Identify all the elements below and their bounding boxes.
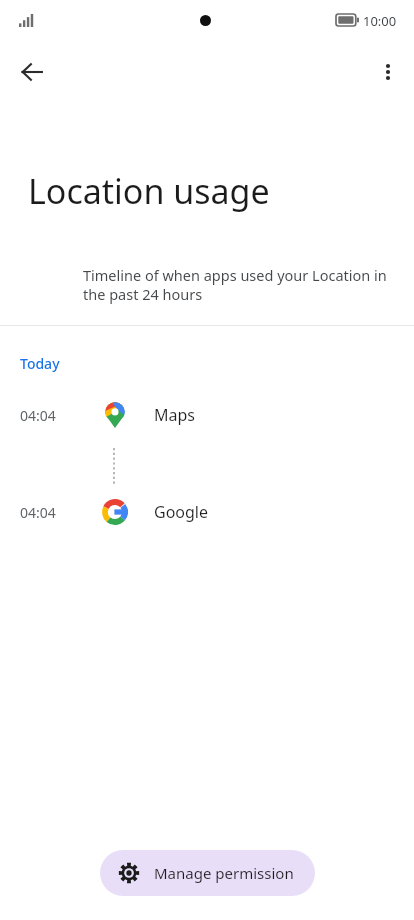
staticText: 10:00 xyxy=(363,12,397,30)
button[interactable]: 04:04 xyxy=(0,491,414,533)
staticText: 04:04 xyxy=(20,503,56,522)
staticText: Today xyxy=(20,354,60,373)
button[interactable]: More options xyxy=(368,52,408,92)
staticText: Manage permission xyxy=(154,863,294,883)
staticText: 04:04 xyxy=(20,406,56,425)
button[interactable]: Back xyxy=(12,52,52,92)
staticText: Location usage xyxy=(28,168,270,214)
staticText: Timeline of when apps used your Location… xyxy=(83,265,391,305)
button[interactable]: 04:04 xyxy=(0,394,414,436)
staticText: Google xyxy=(154,501,209,523)
staticText: Maps xyxy=(154,404,195,426)
button[interactable]: Manage permission xyxy=(100,850,315,896)
